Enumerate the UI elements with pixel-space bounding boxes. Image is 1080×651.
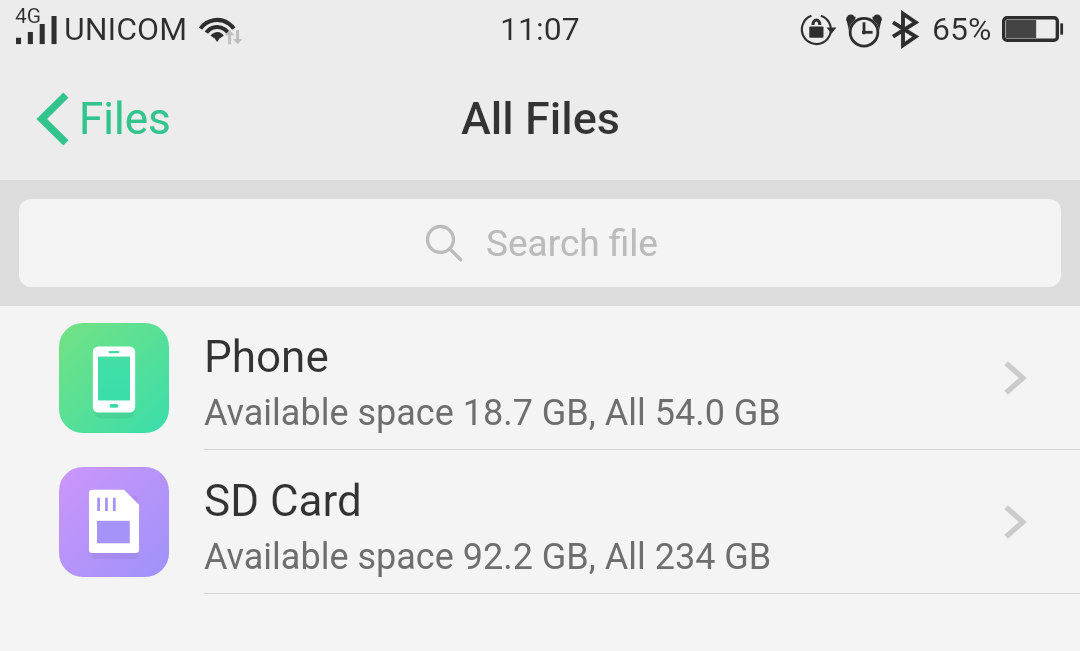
staticText: Available space 92.2 GB, All 234 GB	[204, 536, 772, 578]
staticText: Search file	[486, 222, 658, 265]
button[interactable]: SD Card	[0, 450, 1080, 594]
other: Open SD Card	[1003, 504, 1026, 540]
staticText: Phone	[204, 331, 329, 383]
other: Open Phone	[1003, 360, 1026, 396]
staticText: All Files	[461, 92, 620, 145]
staticText: 4G	[15, 4, 42, 29]
button[interactable]: Phone	[0, 306, 1080, 450]
staticText: 11:07	[500, 10, 580, 48]
button[interactable]: Search file	[19, 199, 1061, 287]
button[interactable]: Back	[0, 75, 197, 163]
staticText: Files	[79, 93, 171, 145]
staticText: UNICOM	[64, 10, 188, 48]
staticText: 65%	[932, 10, 992, 48]
staticText: Available space 18.7 GB, All 54.0 GB	[204, 392, 781, 434]
other: Back	[38, 94, 67, 144]
staticText: SD Card	[204, 475, 362, 527]
